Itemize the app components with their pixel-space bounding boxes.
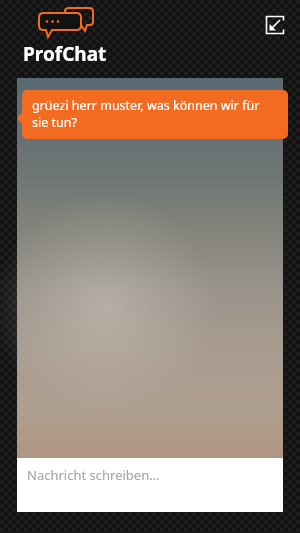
button[interactable]: grüezi herr muster, was können wir für s… <box>22 90 288 139</box>
button[interactable]: Minimize chat <box>262 12 288 38</box>
button[interactable]: Nachricht schreiben... <box>17 458 283 512</box>
staticText: grüezi herr muster, was können wir für s… <box>32 97 278 131</box>
staticText: Nachricht schreiben... <box>27 466 160 484</box>
staticText: ProfChat <box>23 41 107 67</box>
